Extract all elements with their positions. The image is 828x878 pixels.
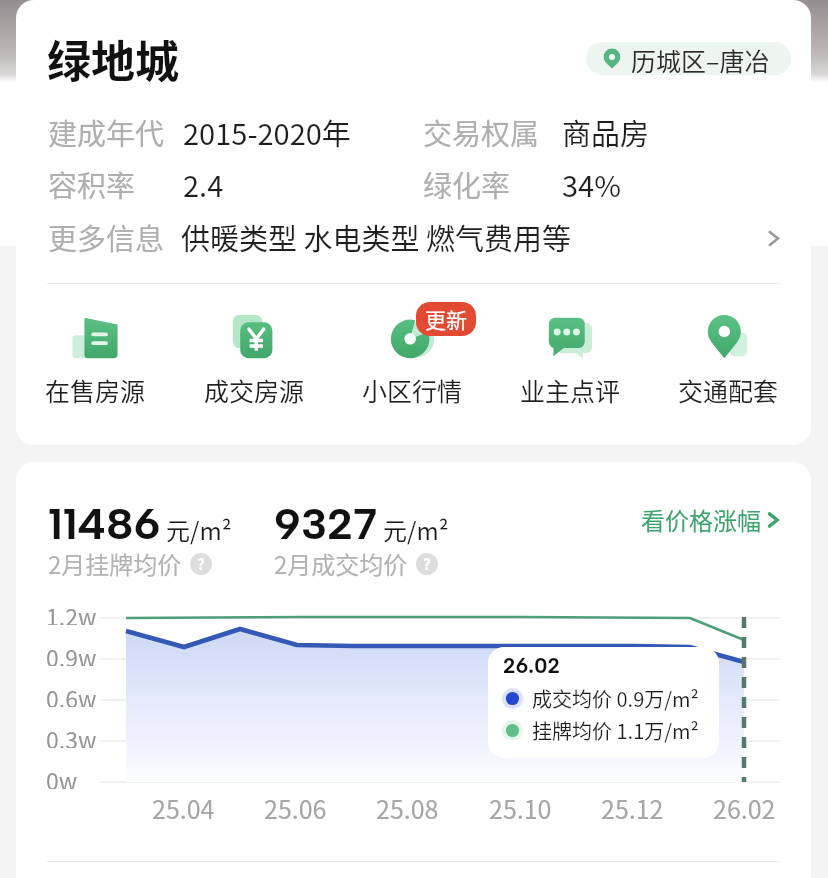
button[interactable]: 交通配套 bbox=[658, 302, 798, 410]
staticText: 元/m² bbox=[166, 512, 232, 547]
staticText: 25.08 bbox=[376, 790, 439, 826]
staticText: 9327 bbox=[274, 497, 378, 550]
staticText: 26.02 bbox=[503, 653, 560, 678]
other: 看价格涨幅 bbox=[765, 512, 781, 528]
staticText: 2.4 bbox=[183, 163, 224, 205]
button[interactable]: 历城区–唐冶 bbox=[586, 42, 791, 75]
staticText: 成交均价 0.9万/m² bbox=[532, 684, 699, 713]
staticText: 0.6w bbox=[46, 681, 97, 707]
staticText: 绿地城 bbox=[47, 27, 179, 91]
staticText: 25.10 bbox=[489, 790, 552, 826]
staticText: 交易权属 bbox=[423, 111, 540, 153]
staticText: 小区行情 bbox=[362, 372, 463, 408]
staticText: 2月成交均价 bbox=[274, 546, 408, 581]
staticText: 2月挂牌均价 bbox=[48, 546, 182, 581]
staticText: 更新 bbox=[425, 304, 467, 334]
staticText: 34% bbox=[562, 163, 621, 205]
staticText: ? bbox=[423, 553, 431, 575]
staticText: 11486 bbox=[48, 497, 161, 550]
button[interactable]: 成交房源 bbox=[184, 302, 324, 410]
staticText: 业主点评 bbox=[520, 372, 621, 408]
staticText: ? bbox=[197, 553, 205, 575]
other: 更多信息 bbox=[765, 230, 782, 247]
staticText: 0w bbox=[46, 763, 78, 789]
staticText: 看价格涨幅 bbox=[641, 502, 761, 537]
staticText: 挂牌均价 1.1万/m² bbox=[532, 716, 699, 745]
button[interactable]: 在售房源 bbox=[25, 302, 165, 410]
staticText: 容积率 bbox=[48, 163, 136, 205]
button[interactable]: 更新 bbox=[342, 302, 482, 410]
staticText: 成交房源 bbox=[204, 372, 305, 408]
staticText: 1.2w bbox=[46, 599, 97, 625]
staticText: 在售房源 bbox=[45, 372, 146, 408]
staticText: 更多信息 bbox=[48, 216, 165, 258]
staticText: 25.04 bbox=[152, 790, 215, 826]
staticText: 建成年代 bbox=[48, 111, 165, 153]
staticText: 绿化率 bbox=[423, 163, 511, 205]
staticText: 25.12 bbox=[601, 790, 664, 826]
staticText: 0.9w bbox=[46, 640, 97, 666]
staticText: 0.3w bbox=[46, 722, 97, 748]
button[interactable]: 更多信息 bbox=[756, 221, 790, 255]
staticText: 25.06 bbox=[264, 790, 327, 826]
staticText: 商品房 bbox=[562, 111, 650, 153]
staticText: 交通配套 bbox=[678, 372, 779, 408]
button[interactable]: 看价格涨幅 bbox=[637, 498, 785, 541]
staticText: 26.02 bbox=[713, 790, 776, 826]
button[interactable]: 业主点评 bbox=[500, 302, 640, 410]
staticText: 元/m² bbox=[383, 512, 449, 547]
staticText: 历城区–唐冶 bbox=[631, 42, 770, 75]
staticText: 供暖类型 水电类型 燃气费用等 bbox=[181, 216, 571, 258]
staticText: 2015-2020年 bbox=[183, 111, 351, 153]
